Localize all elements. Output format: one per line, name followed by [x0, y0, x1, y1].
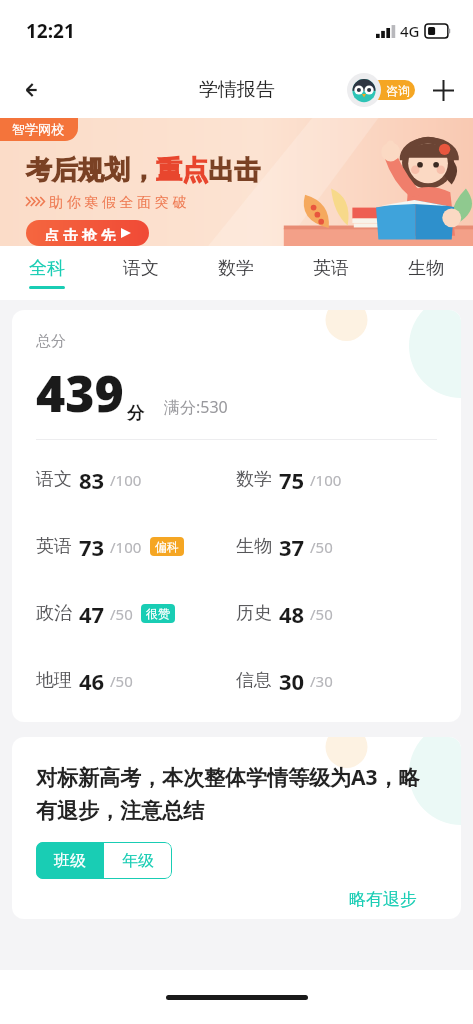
button[interactable]: Back — [12, 68, 56, 112]
button[interactable]: 语文 — [94, 246, 188, 300]
staticText: 班级 — [54, 851, 86, 871]
staticText: 学情报告 — [199, 78, 275, 102]
staticText: /30 — [310, 671, 333, 691]
button[interactable]: 信息 — [236, 647, 437, 714]
staticText: 满分:530 — [164, 396, 228, 418]
staticText: 73 — [79, 532, 105, 562]
staticText: 全科 — [29, 257, 65, 280]
button[interactable]: 历史 — [236, 580, 437, 647]
button[interactable]: 数学 — [236, 446, 437, 513]
staticText: 信息 — [236, 669, 272, 692]
staticText: 数学 — [218, 257, 254, 280]
button[interactable]: 班级 — [36, 842, 104, 879]
staticText: 年级 — [122, 851, 154, 871]
staticText: 很赞 — [146, 606, 170, 621]
staticText: 48 — [279, 599, 305, 629]
staticText: 46 — [79, 666, 105, 696]
staticText: 助 你 寒 假 全 面 突 破 — [49, 192, 187, 211]
staticText: 37 — [279, 532, 305, 562]
staticText: /50 — [310, 537, 333, 557]
staticText: 12:21 — [26, 18, 75, 44]
button[interactable]: 地理 — [36, 647, 236, 714]
staticText: /100 — [310, 470, 342, 490]
staticText: 47 — [79, 599, 105, 629]
button[interactable]: 年级 — [104, 842, 172, 879]
staticText: 略有退步 — [349, 889, 417, 910]
staticText: 地理 — [36, 669, 72, 692]
staticText: 439 — [36, 359, 124, 427]
staticText: 点 击 抢 先 — [44, 225, 116, 241]
staticText: 30 — [279, 666, 305, 696]
button[interactable]: 生物 — [236, 513, 437, 580]
staticText: 75 — [279, 465, 305, 495]
staticText: 分 — [127, 403, 144, 424]
staticText: 总分 — [36, 332, 66, 351]
staticText: 数学 — [236, 468, 272, 491]
staticText: 咨询 — [386, 83, 410, 98]
staticText: 智学网校 — [12, 121, 64, 137]
staticText: /100 — [110, 537, 142, 557]
staticText: /50 — [110, 671, 133, 691]
staticText: /100 — [110, 470, 142, 490]
staticText: 考后规划， — [26, 154, 156, 187]
staticText: 英语 — [36, 535, 72, 558]
button[interactable]: 英语 — [36, 513, 236, 580]
staticText: 重点 — [156, 154, 208, 187]
button[interactable]: 英语 — [283, 246, 378, 300]
button[interactable]: 点 击 抢 先 — [26, 220, 149, 246]
staticText: 83 — [79, 465, 105, 495]
staticText: 英语 — [313, 257, 349, 280]
staticText: 4G — [400, 21, 420, 41]
staticText: 语文 — [123, 257, 159, 280]
staticText: 语文 — [36, 468, 72, 491]
button[interactable]: 咨询 — [347, 73, 415, 107]
button[interactable]: 语文 — [36, 446, 236, 513]
staticText: 对标新高考，本次整体学情等级为A3，略有退步，注意总结 — [36, 763, 437, 824]
staticText: /50 — [110, 604, 133, 624]
staticText: 生物 — [408, 257, 444, 280]
button[interactable]: Add — [421, 68, 465, 112]
button[interactable]: 生物 — [378, 246, 473, 300]
button[interactable]: 全科 — [0, 246, 94, 300]
staticText: 政治 — [36, 602, 72, 625]
staticText: /50 — [310, 604, 333, 624]
staticText: 生物 — [236, 535, 272, 558]
staticText: 历史 — [236, 602, 272, 625]
button[interactable]: 智学网校 — [0, 118, 473, 246]
button[interactable]: 数学 — [188, 246, 283, 300]
button[interactable]: 政治 — [36, 580, 236, 647]
staticText: 出击 — [208, 154, 260, 187]
staticText: 偏科 — [155, 539, 179, 554]
